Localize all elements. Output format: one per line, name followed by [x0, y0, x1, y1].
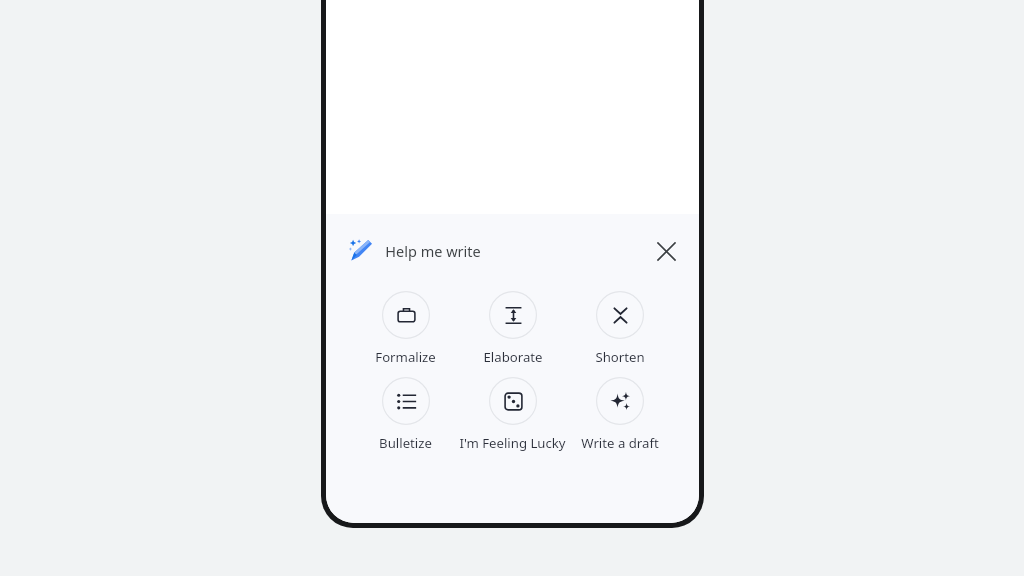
staticText: Formalize	[375, 348, 436, 366]
button[interactable]: I'm Feeling Lucky	[459, 377, 566, 452]
button[interactable]: Formalize	[352, 291, 459, 366]
staticText: Shorten	[595, 348, 645, 366]
button[interactable]: Elaborate	[459, 291, 566, 366]
staticText: I'm Feeling Lucky	[459, 434, 566, 452]
staticText: Help me write	[385, 241, 481, 261]
staticText: Bulletize	[379, 434, 432, 452]
button[interactable]: Shorten	[566, 291, 673, 366]
button[interactable]: Write a draft	[566, 377, 673, 452]
other: Help me write	[349, 239, 373, 263]
staticText: Elaborate	[483, 348, 543, 366]
button[interactable]: Close	[646, 231, 686, 271]
button[interactable]: Bulletize	[352, 377, 459, 452]
staticText: Write a draft	[581, 434, 659, 452]
